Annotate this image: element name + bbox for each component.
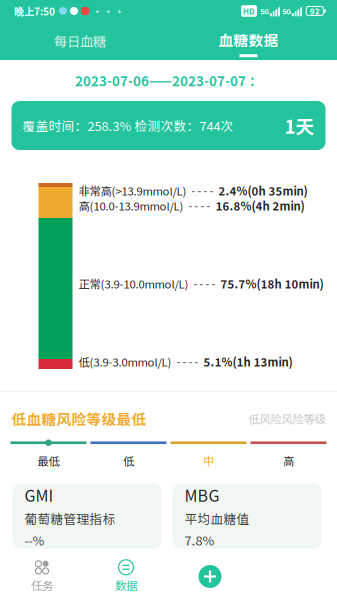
staticText: 平均血糖值 [184,509,249,528]
staticText: 晚上7:50 [14,4,55,18]
staticText: 低(3.9-3.0mmol/L) [78,353,171,370]
staticText: 7.8% [184,531,214,549]
staticText: 中 [203,452,214,469]
staticText: 2023-07-06——2023-07-07 ： [75,71,262,90]
staticText: ··· [92,3,125,19]
staticText: HD [243,5,255,17]
staticText: - - - - [188,198,210,213]
staticText: 最低 [37,452,59,469]
staticText: 2.4%(0h 35min) [218,182,307,199]
staticText: 低血糖风险等级最低 [11,408,146,429]
staticText: 数据 [115,577,137,593]
button[interactable]: MBG [172,484,321,549]
staticText: 16.8%(4h 2min) [215,197,304,214]
staticText: 92 [310,5,320,17]
staticText: 5G [260,6,269,16]
staticText: 低风险风险等级 [248,410,325,427]
button[interactable]: GMI [12,484,161,549]
staticText: 1天 [284,112,314,139]
staticText: 血糖数据 [218,29,278,50]
staticText: 75.7%(18h 10min) [220,275,323,292]
staticText: 葡萄糖管理指标 [24,509,115,528]
button[interactable]: 血糖数据 [160,22,337,60]
staticText: 覆盖时间：258.3% 检测次数：744次 [22,116,233,135]
staticText: 低 [123,452,134,469]
staticText: 5G [282,6,291,16]
staticText: 每日血糖 [54,31,106,50]
staticText: 非常高(>13.9mmol/L) [78,182,186,199]
staticText: - - - - [191,183,213,198]
staticText: - - - - [193,276,215,291]
staticText: 高 [283,452,294,469]
button[interactable]: Add [168,553,252,600]
staticText: 高(10.0-13.9mmol/L) [78,197,183,214]
staticText: 正常(3.9-10.0mmol/L) [78,275,188,292]
staticText: --% [24,531,44,549]
staticText: - - - - [176,354,198,369]
staticText: GMI [24,483,53,506]
staticText: 任务 [31,577,53,593]
staticText: 5.1%(1h 13min) [203,353,292,370]
button[interactable]: 任务 [0,553,84,600]
button[interactable]: 数据 [84,553,168,600]
staticText: MBG [184,483,219,506]
button[interactable]: 每日血糖 [0,22,160,60]
